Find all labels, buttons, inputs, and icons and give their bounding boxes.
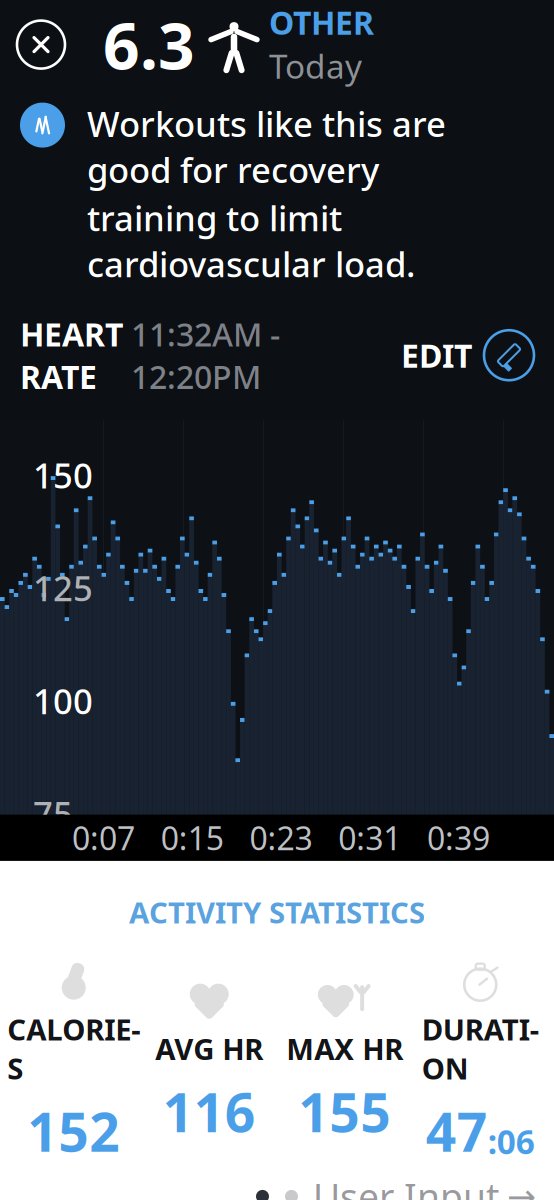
- staticText: 11:32AM - 12:20PM: [131, 313, 280, 398]
- staticText: 47: [426, 1096, 488, 1166]
- staticText: 150: [33, 452, 93, 498]
- staticText: DURATION: [422, 1010, 539, 1088]
- staticText: 116: [163, 1076, 256, 1147]
- staticText: AVG HR: [155, 1029, 263, 1068]
- staticText: 6.3: [103, 2, 195, 87]
- staticText: HEART RATE: [20, 313, 123, 398]
- button[interactable]: User Input: [313, 1166, 536, 1200]
- staticText: User Input: [313, 1172, 499, 1200]
- button[interactable]: Close: [7, 11, 75, 79]
- staticText: →: [507, 1177, 536, 1200]
- staticText: 125: [33, 565, 93, 611]
- staticText: ACTIVITY STATISTICS: [129, 893, 425, 932]
- staticText: 152: [27, 1096, 120, 1166]
- staticText: CALORIES: [7, 1010, 140, 1088]
- staticText: 0:23: [249, 816, 312, 859]
- staticText: 75: [33, 790, 73, 836]
- staticText: 155: [298, 1076, 391, 1147]
- staticText: :06: [488, 1119, 535, 1163]
- staticText: EDIT: [401, 334, 472, 376]
- staticText: MAX HR: [286, 1029, 403, 1068]
- staticText: Today: [269, 44, 362, 88]
- button[interactable]: EDIT: [401, 330, 534, 380]
- staticText: 0:39: [427, 816, 490, 859]
- staticText: 100: [33, 678, 93, 724]
- staticText: 0:15: [161, 816, 224, 859]
- staticText: 0:07: [72, 816, 135, 859]
- staticText: OTHER: [269, 1, 374, 44]
- staticText: training to limit cardiovascular load.: [87, 195, 415, 287]
- staticText: Workouts like this are good for recovery: [87, 101, 446, 193]
- staticText: 0:31: [338, 816, 401, 859]
